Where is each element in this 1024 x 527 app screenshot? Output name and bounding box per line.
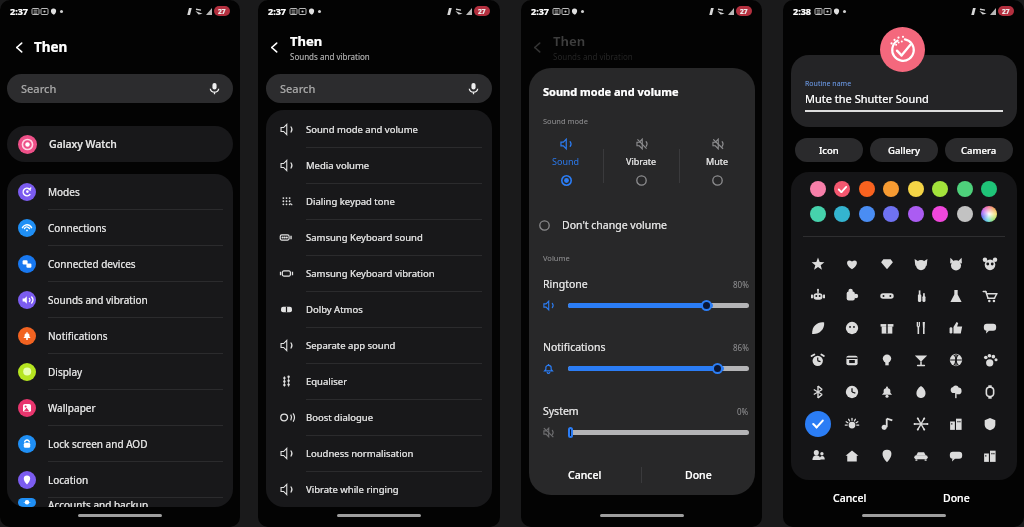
- button[interactable]: city: [977, 443, 1003, 469]
- button[interactable]: face: [839, 315, 865, 341]
- button[interactable]: cocktail: [908, 347, 934, 373]
- button[interactable]: Routine icon: [880, 27, 925, 72]
- button[interactable]: Boost dialogue: [266, 400, 492, 435]
- button[interactable]: Search: [7, 74, 233, 103]
- button[interactable]: Colour: [981, 181, 997, 197]
- button[interactable]: watch: [977, 379, 1003, 405]
- button[interactable]: Loudness normalisation: [266, 436, 492, 471]
- button[interactable]: Colour: [932, 206, 948, 222]
- button[interactable]: Search: [266, 74, 492, 103]
- button[interactable]: shield: [977, 411, 1003, 437]
- button[interactable]: Colour: [810, 181, 826, 197]
- button[interactable]: Location: [7, 462, 233, 497]
- button[interactable]: tree: [943, 379, 969, 405]
- button[interactable]: fork: [908, 315, 934, 341]
- button[interactable]: bt: [805, 379, 831, 405]
- button[interactable]: calendar: [839, 347, 865, 373]
- button[interactable]: Don't change volume: [539, 213, 745, 237]
- button[interactable]: Camera: [945, 138, 1013, 162]
- button[interactable]: Colour: [957, 181, 973, 197]
- button[interactable]: Vibrate: [604, 138, 679, 186]
- button[interactable]: Media volume: [266, 148, 492, 183]
- staticText: System: [543, 404, 737, 418]
- button[interactable]: sun: [839, 411, 865, 437]
- button[interactable]: star: [805, 251, 831, 277]
- button[interactable]: egg: [908, 379, 934, 405]
- button[interactable]: alarm: [805, 347, 831, 373]
- button[interactable]: Colour: [908, 181, 924, 197]
- button[interactable]: Connections: [7, 210, 233, 245]
- button[interactable]: Dialing keypad tone: [266, 184, 492, 219]
- button[interactable]: Connected devices: [7, 246, 233, 281]
- button[interactable]: flask: [943, 283, 969, 309]
- button[interactable]: chat: [977, 315, 1003, 341]
- button[interactable]: Colour: [957, 206, 973, 222]
- button[interactable]: Samsung Keyboard vibration: [266, 256, 492, 291]
- button[interactable]: bulb: [874, 347, 900, 373]
- button[interactable]: dog: [908, 251, 934, 277]
- button[interactable]: Colour: [859, 206, 875, 222]
- button[interactable]: Vibrate while ringing: [266, 472, 492, 507]
- button[interactable]: Back: [4, 32, 34, 62]
- button[interactable]: Colour: [908, 206, 924, 222]
- button[interactable]: System volume slider: [563, 426, 749, 438]
- button[interactable]: Colour: [859, 181, 875, 197]
- button[interactable]: robot: [805, 283, 831, 309]
- button[interactable]: Done: [642, 458, 755, 492]
- button[interactable]: Lock screen and AOD: [7, 426, 233, 461]
- button[interactable]: Colour: [834, 181, 850, 197]
- button[interactable]: Galaxy Watch: [7, 126, 233, 162]
- button[interactable]: Equaliser: [266, 364, 492, 399]
- button[interactable]: Colour: [883, 206, 899, 222]
- button[interactable]: speech: [943, 443, 969, 469]
- button[interactable]: Sound: [529, 138, 603, 186]
- button[interactable]: check: [805, 411, 831, 437]
- button[interactable]: person: [805, 443, 831, 469]
- button[interactable]: Colour: [932, 181, 948, 197]
- button[interactable]: ball: [943, 347, 969, 373]
- button[interactable]: note: [874, 411, 900, 437]
- button[interactable]: Sound mode and volume: [266, 112, 492, 147]
- button[interactable]: pin: [874, 443, 900, 469]
- button[interactable]: cat: [943, 251, 969, 277]
- button[interactable]: Wallpaper: [7, 390, 233, 425]
- button[interactable]: clock: [839, 379, 865, 405]
- button[interactable]: Dolby Atmos: [266, 292, 492, 327]
- button[interactable]: bottle: [908, 283, 934, 309]
- button[interactable]: Icon: [795, 138, 863, 162]
- button[interactable]: leaf: [805, 315, 831, 341]
- button[interactable]: Done: [903, 486, 1010, 510]
- button[interactable]: gamepad: [874, 283, 900, 309]
- button[interactable]: gift: [874, 315, 900, 341]
- button[interactable]: bell: [874, 379, 900, 405]
- button[interactable]: Colour: [883, 181, 899, 197]
- button[interactable]: heart: [839, 251, 865, 277]
- button[interactable]: Separate app sound: [266, 328, 492, 363]
- button[interactable]: Sounds and vibration: [7, 282, 233, 317]
- button[interactable]: Colour: [834, 206, 850, 222]
- button[interactable]: diamond: [874, 251, 900, 277]
- button[interactable]: Cancel: [529, 458, 641, 492]
- button[interactable]: car: [908, 443, 934, 469]
- button[interactable]: building: [943, 411, 969, 437]
- button[interactable]: Accounts and backup: [7, 498, 233, 507]
- button[interactable]: Cancel: [797, 486, 903, 510]
- button[interactable]: Gallery: [870, 138, 938, 162]
- button[interactable]: Notifications: [7, 318, 233, 353]
- button[interactable]: Back: [258, 31, 290, 63]
- button[interactable]: thumb: [943, 315, 969, 341]
- button[interactable]: snow: [908, 411, 934, 437]
- button[interactable]: Ringtone volume slider: [563, 299, 749, 311]
- button[interactable]: Mute: [680, 138, 755, 186]
- button[interactable]: puzzle: [839, 283, 865, 309]
- button[interactable]: panda: [977, 251, 1003, 277]
- button[interactable]: Notifications volume slider: [563, 362, 749, 374]
- button[interactable]: paw: [977, 347, 1003, 373]
- button[interactable]: Colour: [810, 206, 826, 222]
- button[interactable]: Samsung Keyboard sound: [266, 220, 492, 255]
- button[interactable]: Display: [7, 354, 233, 389]
- button[interactable]: cart: [977, 283, 1003, 309]
- button[interactable]: home: [839, 443, 865, 469]
- button[interactable]: Custom colour: [981, 206, 997, 222]
- button[interactable]: Modes: [7, 174, 233, 209]
